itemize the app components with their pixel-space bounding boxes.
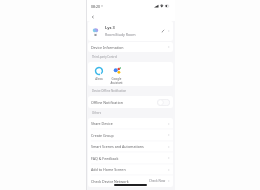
staticText: Device Information <box>91 45 124 50</box>
button[interactable]: Create Group <box>88 129 173 141</box>
staticText: Offline Notification <box>91 100 123 105</box>
staticText: Room:Study Room <box>105 32 136 37</box>
staticText: Lys 3 <box>105 25 115 30</box>
button[interactable]: Check Device Network <box>88 175 173 187</box>
staticText: Add to Home Screen <box>91 167 126 172</box>
button[interactable]: Offline Notification toggle <box>157 99 170 106</box>
staticText: Device Offline Notification <box>92 89 127 93</box>
staticText: Others <box>92 111 101 115</box>
button[interactable]: Add to Home Screen <box>88 164 173 175</box>
button[interactable]: Device Information <box>88 42 173 52</box>
button[interactable]: Offline Notification <box>88 96 173 108</box>
button[interactable]: Alexa <box>90 67 107 81</box>
staticText: Check Device Network <box>91 179 129 184</box>
staticText: Smart Scenes and Automations <box>91 144 144 149</box>
staticText: Google Assistant <box>110 77 123 85</box>
button[interactable]: Lys 3 <box>88 21 173 41</box>
button[interactable]: Google Assistant <box>108 67 125 85</box>
staticText: 08:20 <box>91 4 100 9</box>
button[interactable]: Back <box>89 13 97 21</box>
button[interactable]: Smart Scenes and Automations <box>88 141 173 152</box>
staticText: Share Device <box>91 121 113 126</box>
staticText: Alexa <box>95 77 103 81</box>
staticText: FAQ & Feedback <box>91 156 119 161</box>
staticText: Create Group <box>91 133 114 138</box>
staticText: Check Now <box>149 179 166 183</box>
button[interactable]: Share Device <box>88 118 173 129</box>
button[interactable]: Edit device name <box>160 28 166 34</box>
button[interactable]: FAQ & Feedback <box>88 152 173 164</box>
staticText: Third-party Control <box>92 55 118 59</box>
